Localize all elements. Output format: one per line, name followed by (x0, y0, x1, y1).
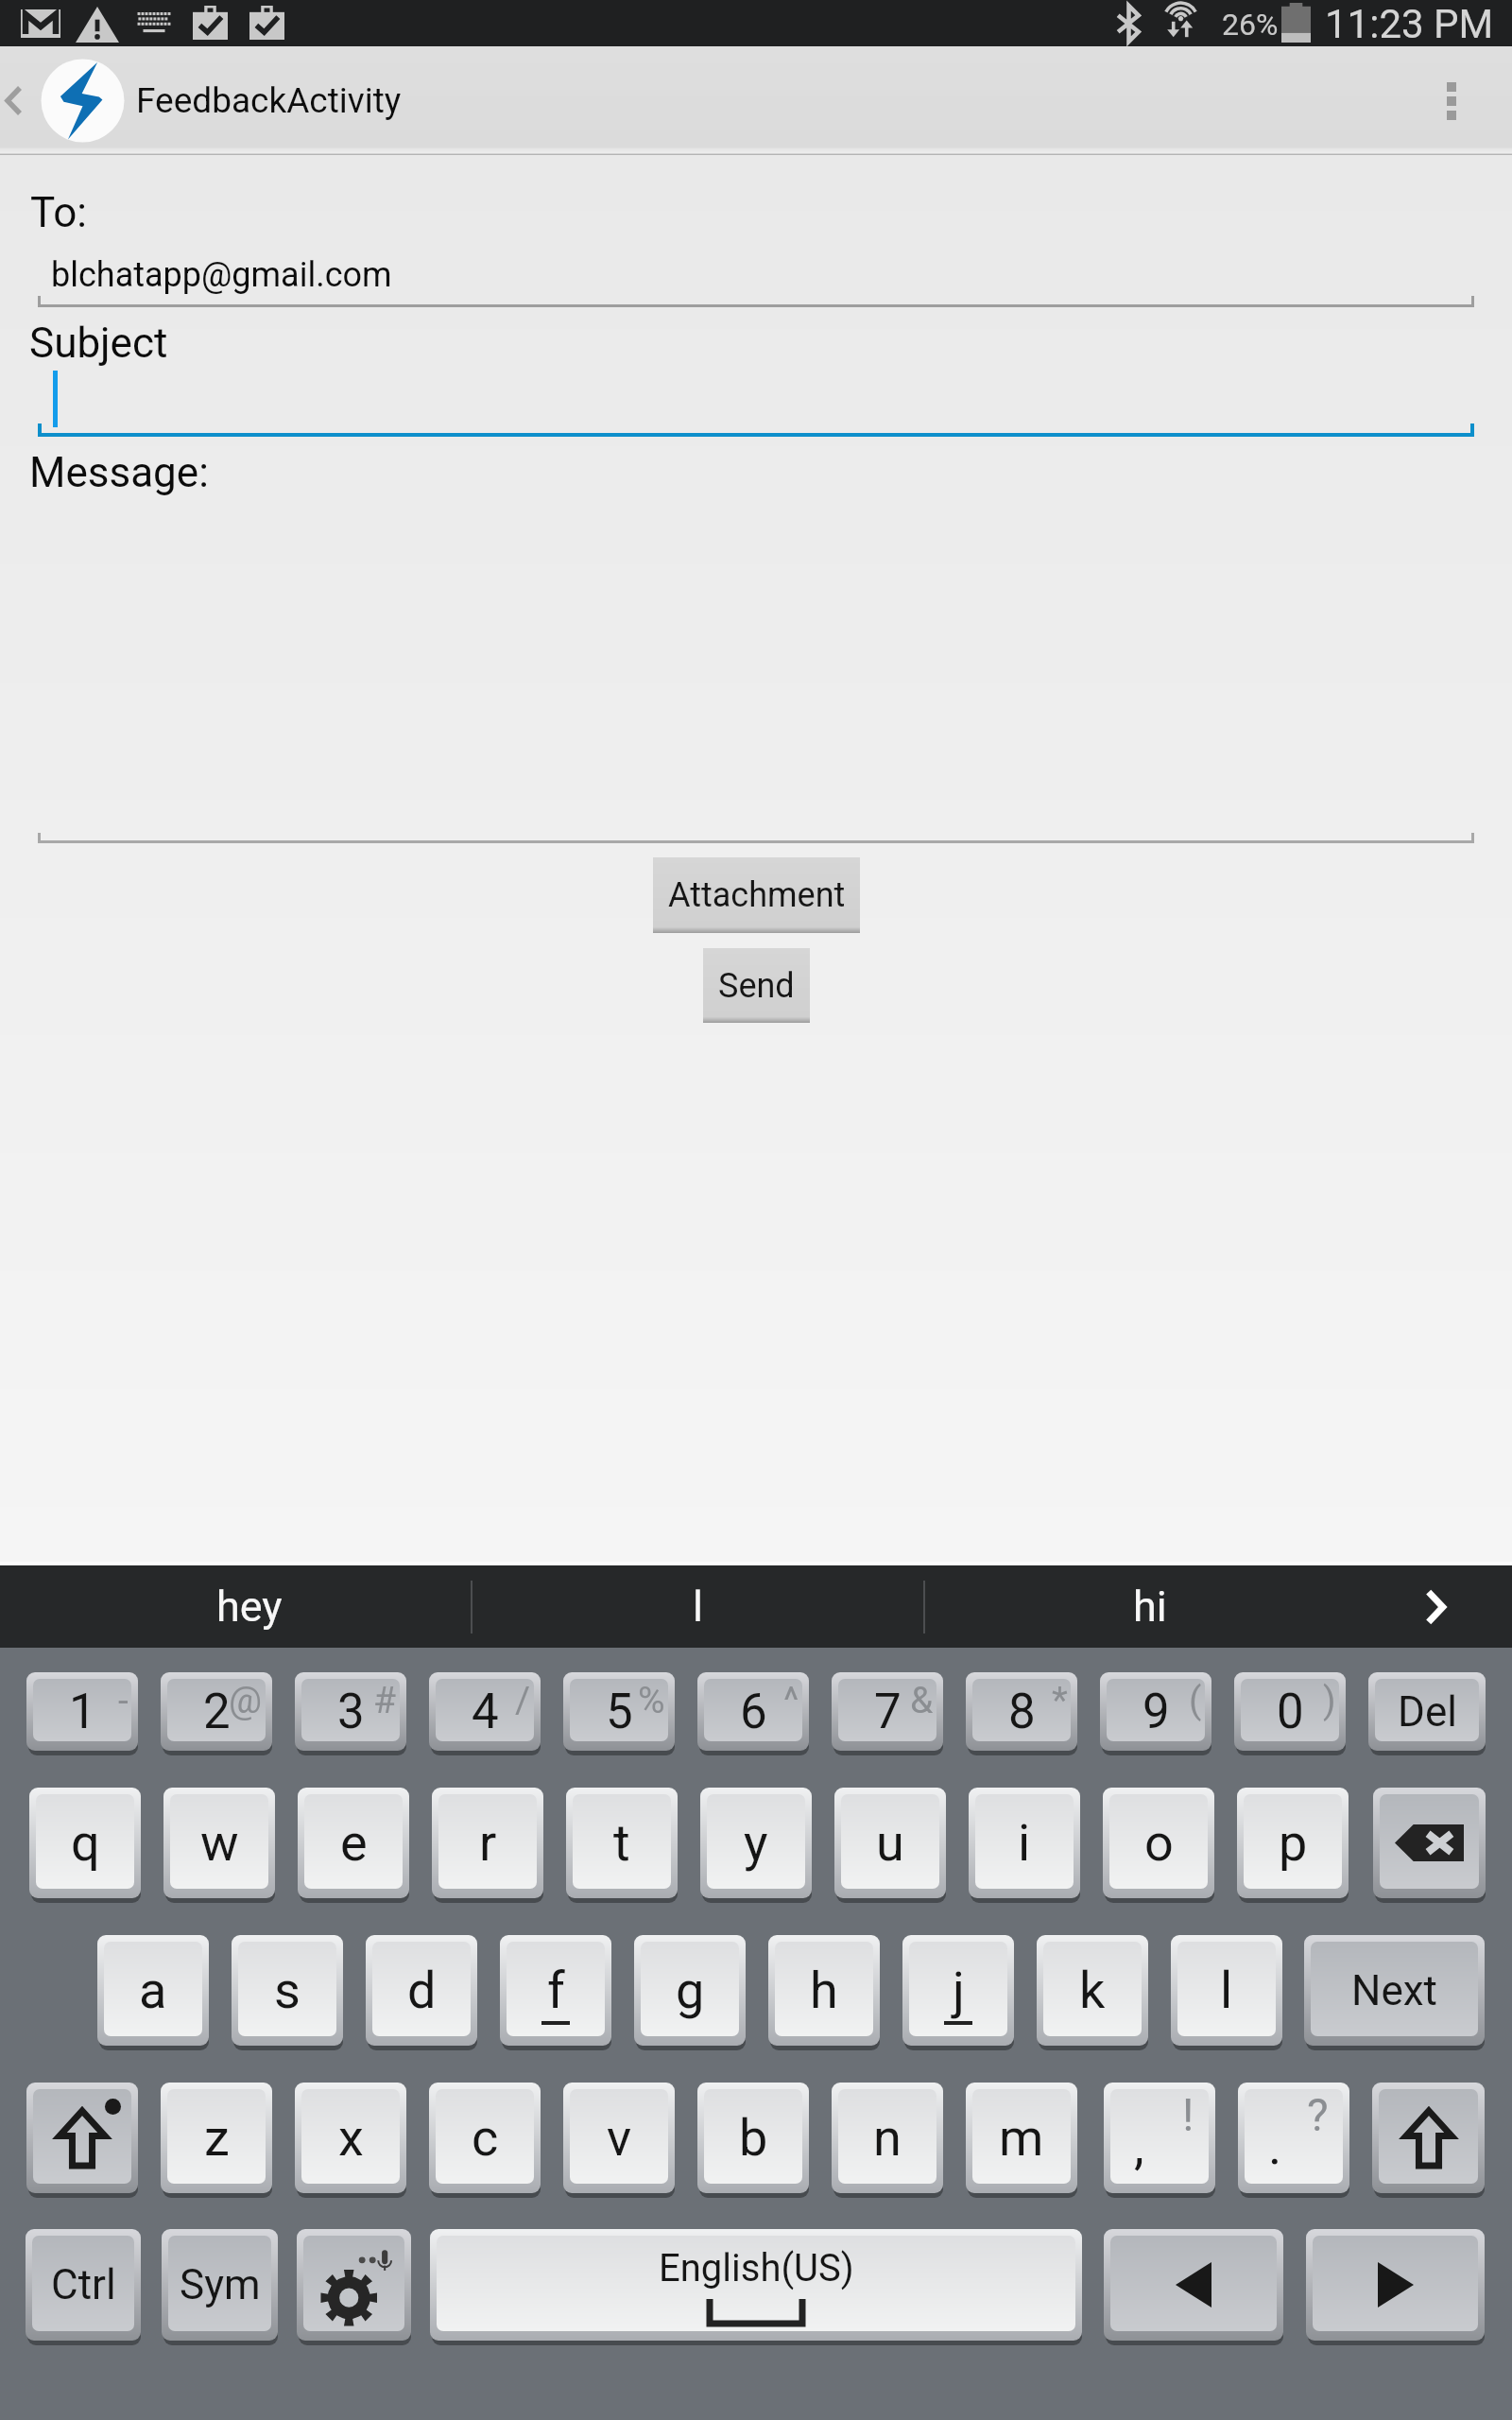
button[interactable]: l (1171, 1935, 1282, 2046)
staticText: & (910, 1679, 934, 1722)
button[interactable]: 4 (429, 1672, 541, 1751)
button[interactable]: More suggestions (1374, 1565, 1512, 1648)
button[interactable]: e (298, 1788, 409, 1898)
staticText: j (953, 1961, 965, 2020)
button[interactable]: 5 (563, 1672, 675, 1751)
button[interactable]: Move cursor left (1104, 2229, 1283, 2341)
button[interactable]: Backspace (1373, 1788, 1486, 1898)
button[interactable]: Shift (1372, 2083, 1485, 2193)
button[interactable]: Send (703, 948, 810, 1023)
staticText: 8 (1008, 1684, 1036, 1740)
staticText: g (676, 1961, 705, 2020)
button[interactable]: Ctrl (26, 2229, 141, 2341)
staticText: b (739, 2108, 768, 2168)
staticText: 6 (740, 1684, 767, 1740)
staticText: 26% (1222, 7, 1279, 43)
button[interactable]: s (232, 1935, 343, 2046)
button[interactable]: w (163, 1788, 275, 1898)
staticText: 1 (69, 1684, 96, 1740)
button[interactable]: 6 (697, 1672, 809, 1751)
staticText: Ctrl (51, 2260, 116, 2309)
staticText: hi (1133, 1582, 1167, 1632)
staticText: p (1279, 1813, 1308, 1873)
staticText: x (338, 2108, 364, 2168)
staticText: Send (718, 966, 795, 1006)
staticText: To: (30, 188, 87, 237)
staticText: l (1220, 1961, 1233, 2020)
button[interactable]: 7 (832, 1672, 943, 1751)
staticText: FeedbackActivity (136, 80, 402, 121)
button[interactable]: g (634, 1935, 746, 2046)
button[interactable]: Next (1304, 1935, 1485, 2046)
button[interactable]: y (700, 1788, 812, 1898)
button[interactable]: English(US) (430, 2229, 1082, 2341)
button[interactable]: q (29, 1788, 141, 1898)
staticText: - (118, 1679, 129, 1722)
button[interactable]: Keyboard settings (297, 2229, 411, 2341)
button[interactable]: 1 (26, 1672, 138, 1751)
button[interactable]: , (1104, 2083, 1215, 2193)
staticText: Del (1398, 1687, 1457, 1737)
staticText: s (274, 1961, 301, 2020)
button[interactable]: k (1037, 1935, 1148, 2046)
staticText: 4 (472, 1684, 499, 1740)
button[interactable]: a (97, 1935, 209, 2046)
button[interactable]: x (295, 2083, 406, 2193)
button[interactable]: 3 (295, 1672, 406, 1751)
button[interactable]: z (161, 2083, 272, 2193)
staticText: f (547, 1961, 565, 2020)
staticText: o (1144, 1813, 1174, 1873)
button[interactable]: c (429, 2083, 541, 2193)
button[interactable]: d (366, 1935, 477, 2046)
staticText: q (71, 1813, 100, 1873)
staticText: ( (1189, 1679, 1202, 1722)
button[interactable]: 9 (1100, 1672, 1211, 1751)
staticText: e (340, 1813, 368, 1873)
staticText: hey (216, 1582, 283, 1632)
staticText: r (479, 1813, 497, 1873)
staticText: # (373, 1679, 397, 1722)
staticText: , (1134, 2117, 1144, 2176)
staticText: Message: (29, 448, 209, 497)
button[interactable]: Caps lock (26, 2083, 138, 2193)
button[interactable]: j (902, 1935, 1014, 2046)
staticText: blchatapp@gmail.com (51, 255, 392, 295)
button[interactable]: . (1238, 2083, 1349, 2193)
staticText: 3 (337, 1684, 365, 1740)
staticText: ! (1182, 2088, 1194, 2141)
button[interactable]: 2 (161, 1672, 272, 1751)
button[interactable]: l (472, 1565, 923, 1648)
staticText: t (613, 1813, 630, 1873)
button[interactable]: o (1103, 1788, 1214, 1898)
button[interactable]: Navigate up (0, 53, 413, 148)
staticText: 5 (606, 1684, 633, 1740)
button[interactable]: u (834, 1788, 946, 1898)
button[interactable]: r (432, 1788, 543, 1898)
button[interactable]: p (1237, 1788, 1349, 1898)
button[interactable]: hi (925, 1565, 1374, 1648)
button[interactable]: m (966, 2083, 1077, 2193)
button[interactable]: i (969, 1788, 1080, 1898)
staticText: m (999, 2108, 1044, 2168)
staticText: i (1018, 1813, 1031, 1873)
button[interactable]: b (697, 2083, 809, 2193)
button[interactable]: n (832, 2083, 943, 2193)
button[interactable]: Attachment (653, 857, 860, 933)
button[interactable]: More options (1414, 59, 1512, 144)
staticText: u (876, 1813, 904, 1873)
staticText: Subject (29, 319, 168, 368)
staticText: @ (229, 1679, 263, 1722)
staticText: 9 (1143, 1684, 1170, 1740)
button[interactable]: Move cursor right (1306, 2229, 1485, 2341)
button[interactable]: hey (0, 1565, 471, 1648)
button[interactable]: 0 (1234, 1672, 1346, 1751)
button[interactable]: 8 (966, 1672, 1077, 1751)
button[interactable]: t (566, 1788, 678, 1898)
button[interactable]: Del (1368, 1672, 1486, 1751)
button[interactable]: v (563, 2083, 675, 2193)
button[interactable]: f (500, 1935, 611, 2046)
staticText: l (693, 1582, 703, 1632)
button[interactable]: h (768, 1935, 880, 2046)
staticText: h (810, 1961, 838, 2020)
button[interactable]: Sym (162, 2229, 278, 2341)
